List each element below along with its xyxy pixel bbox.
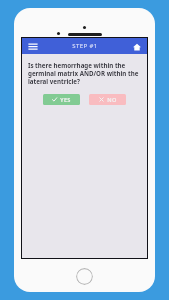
button[interactable]: Open navigation menu: [26, 40, 39, 53]
staticText: NO: [107, 96, 117, 104]
staticText: YES: [60, 96, 71, 104]
button[interactable]: YES: [43, 94, 80, 105]
button[interactable]: NO: [89, 94, 126, 105]
button[interactable]: Home button: [76, 268, 93, 285]
staticText: Is there hemorrhage within the germinal …: [28, 61, 139, 85]
button[interactable]: Home: [130, 40, 143, 53]
staticText: STEP #1: [72, 42, 98, 50]
